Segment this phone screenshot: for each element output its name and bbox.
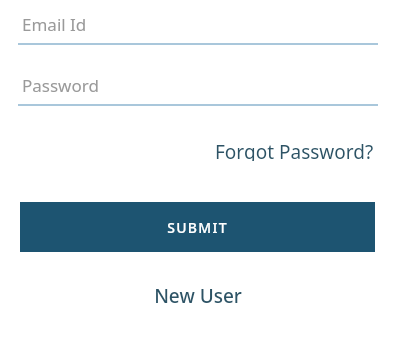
staticText: SUBMIT [167,218,228,237]
button[interactable]: Password [18,69,378,106]
staticText: New User [154,283,242,305]
staticText: Password [22,74,99,97]
staticText: Forgot Password? [215,139,374,161]
button[interactable]: Email Id [18,8,378,45]
button[interactable]: New User [148,280,248,308]
button[interactable]: Forgot Password? [213,136,376,164]
button[interactable]: SUBMIT [20,202,375,252]
staticText: Email Id [22,13,87,36]
